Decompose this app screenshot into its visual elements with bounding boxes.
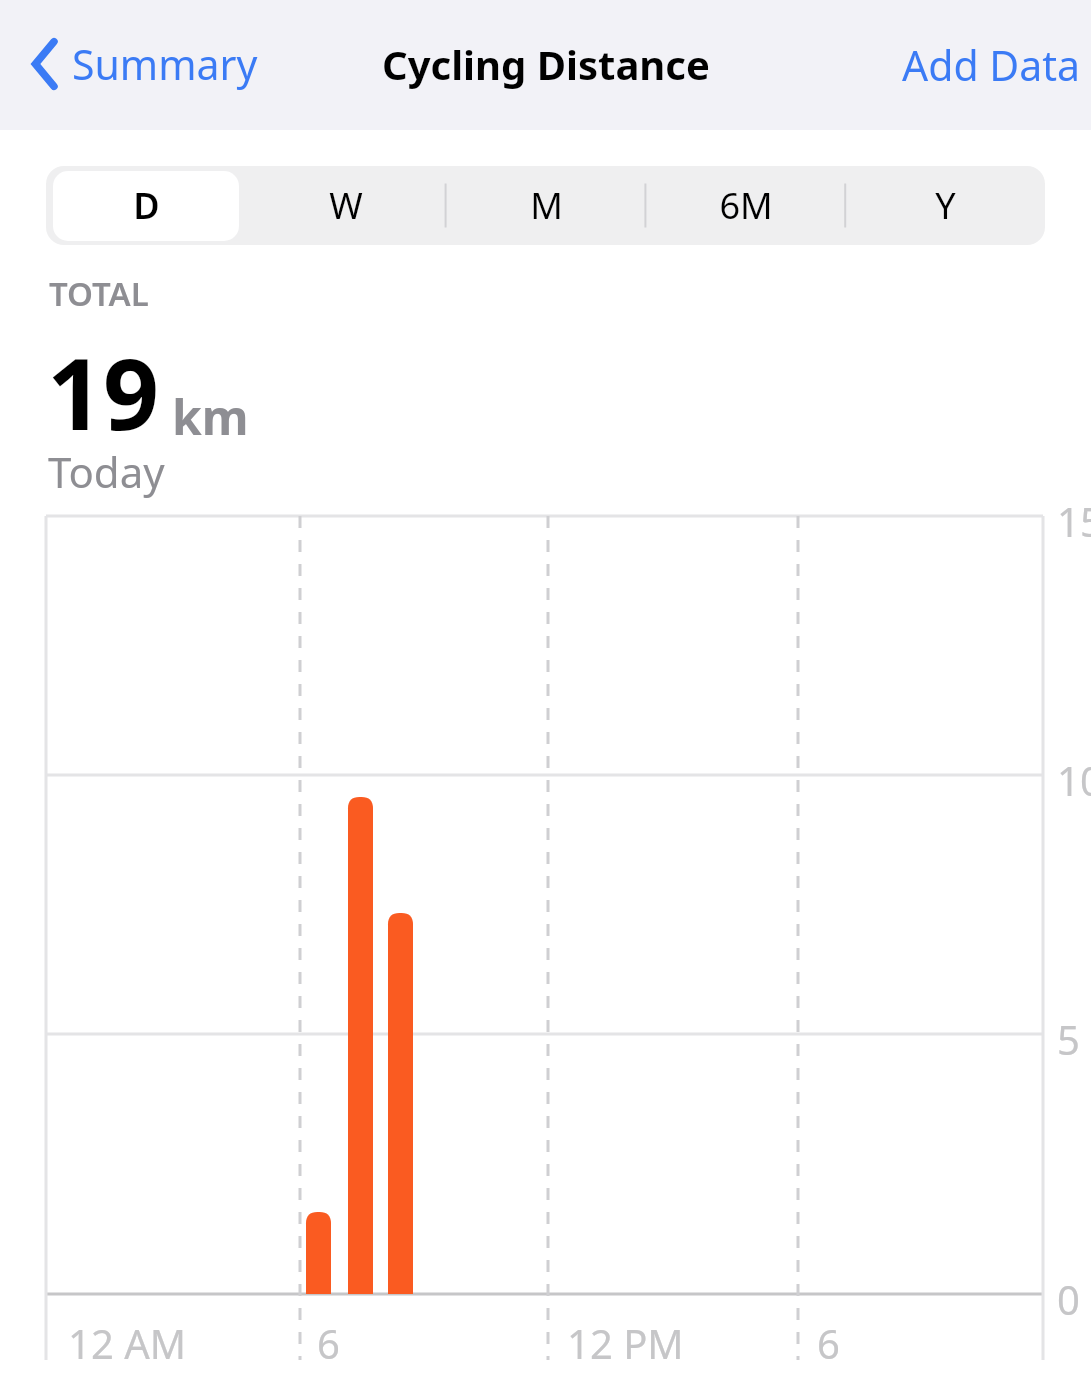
staticText: Today (48, 443, 165, 500)
staticText: Add Data (902, 37, 1081, 93)
staticText: Summary (72, 36, 258, 92)
staticText: TOTAL (49, 271, 149, 316)
staticText: W (329, 181, 363, 230)
button[interactable]: M (446, 166, 646, 245)
staticText: 19 (47, 325, 160, 458)
staticText: km (172, 384, 249, 449)
button[interactable]: D (46, 166, 246, 245)
staticText: Cycling Distance (382, 37, 710, 91)
staticText: 10 (1057, 753, 1091, 807)
staticText: 5 (1057, 1012, 1080, 1066)
button[interactable]: 6M (646, 166, 846, 245)
staticText: 15 (1057, 494, 1091, 548)
staticText: 0 (1057, 1272, 1080, 1326)
button[interactable]: W (246, 166, 446, 245)
staticText: Y (935, 181, 956, 230)
staticText: 6M (719, 181, 773, 230)
staticText: 12 PM (567, 1316, 684, 1370)
button[interactable]: Add Data (892, 29, 1091, 101)
button[interactable]: Y (846, 166, 1045, 245)
staticText: M (530, 181, 563, 230)
staticText: 6 (817, 1316, 840, 1370)
staticText: D (133, 181, 160, 230)
staticText: 6 (317, 1316, 340, 1370)
button[interactable]: Summary (22, 30, 266, 98)
staticText: 12 AM (68, 1316, 186, 1370)
